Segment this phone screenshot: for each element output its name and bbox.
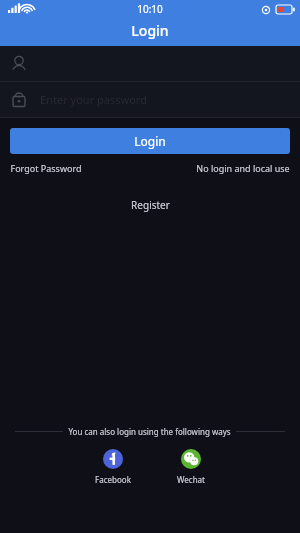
button[interactable]: Facebook (95, 449, 131, 485)
staticText: Login (134, 133, 166, 149)
staticText: Forgot Password (10, 162, 82, 174)
button[interactable]: No login and local use (196, 162, 290, 174)
staticText: No login and local use (196, 162, 290, 174)
staticText: Wechat (177, 474, 205, 485)
button[interactable] (0, 46, 300, 81)
button[interactable]: Wechat (177, 449, 205, 485)
staticText: Enter your password (40, 92, 147, 107)
staticText: Register (131, 198, 170, 212)
button[interactable]: Enter your password (0, 82, 300, 117)
staticText: 10:10 (137, 2, 163, 16)
staticText: Facebook (95, 474, 131, 485)
staticText: Login (131, 21, 169, 40)
button[interactable]: Register (127, 194, 174, 216)
button[interactable]: Forgot Password (10, 162, 82, 174)
staticText: You can also login using the following w… (68, 426, 231, 437)
button[interactable]: Login (10, 128, 290, 154)
